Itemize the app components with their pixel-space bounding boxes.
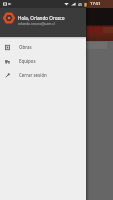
button[interactable]: Cerrar sesión (0, 68, 86, 82)
button[interactable]: Obras (0, 40, 86, 54)
staticText: 45 (78, 2, 82, 7)
staticText: Obras (19, 44, 32, 50)
staticText: orlando.orozco@uam.cl (18, 21, 55, 25)
button[interactable]: Equipos (0, 54, 86, 68)
staticText: Cerrar sesión (19, 72, 47, 78)
staticText: 17:51 (90, 1, 101, 7)
staticText: Hola, Orlando Orozco (18, 15, 65, 21)
staticText: Equipos (19, 58, 36, 64)
